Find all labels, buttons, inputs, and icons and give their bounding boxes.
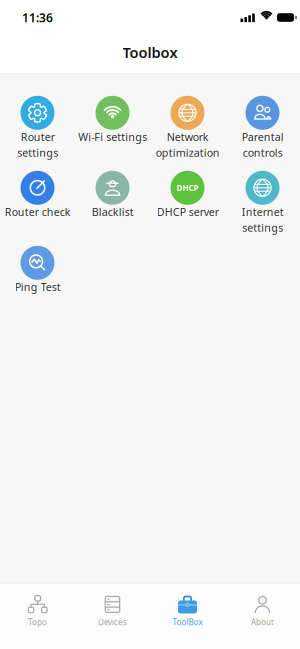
button[interactable]: Blacklist (75, 171, 150, 246)
staticText: Network optimization (155, 130, 219, 160)
staticText: DHCP server (156, 205, 218, 219)
staticText: ToolBox (172, 617, 202, 627)
staticText: Parental controls (241, 130, 283, 160)
button[interactable]: Network optimization (150, 96, 225, 171)
staticText: Router check (4, 205, 70, 219)
staticText: Toolbox (122, 42, 177, 62)
staticText: Topo (28, 617, 47, 627)
button[interactable]: Ping Test (0, 246, 75, 321)
staticText: Internet settings (241, 205, 283, 235)
button[interactable]: DHCP (150, 171, 225, 246)
button[interactable]: ToolBox (150, 595, 225, 627)
button[interactable]: About (225, 595, 300, 627)
staticText: Wi-Fi settings (78, 130, 147, 144)
staticText: Ping Test (14, 280, 60, 294)
staticText: Devices (98, 617, 127, 627)
staticText: 11:36 (22, 9, 53, 25)
button[interactable]: Router check (0, 171, 75, 246)
staticText: About (251, 617, 274, 627)
button[interactable]: Router settings (0, 96, 75, 171)
button[interactable]: Parental controls (225, 96, 300, 171)
button[interactable]: Wi-Fi settings (75, 96, 150, 171)
staticText: Blacklist (91, 205, 133, 219)
button[interactable]: Topo (0, 595, 75, 627)
button[interactable]: Internet settings (225, 171, 300, 246)
button[interactable]: Devices (75, 595, 150, 627)
staticText: Router settings (17, 130, 58, 160)
staticText: DHCP (176, 182, 198, 193)
